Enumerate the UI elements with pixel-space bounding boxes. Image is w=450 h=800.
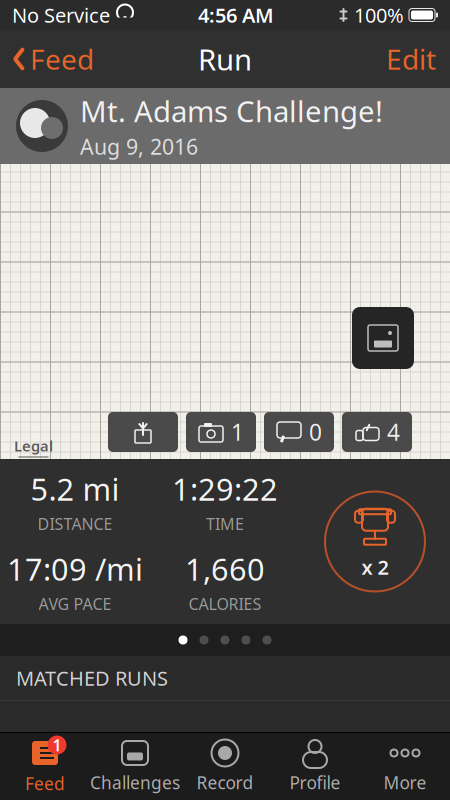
staticText: Challenges: [90, 771, 180, 794]
staticText: 1:29:22: [172, 468, 278, 509]
staticText: x 2: [361, 554, 388, 580]
staticText: MATCHED RUNS: [16, 665, 168, 691]
staticText: 4: [387, 417, 400, 447]
staticText: Aug 9, 2016: [80, 132, 198, 161]
staticText: Mt. Adams Challenge!: [80, 91, 383, 130]
button[interactable]: Profile: [270, 733, 360, 800]
staticText: Feed: [30, 40, 94, 78]
staticText: AVG PACE: [38, 593, 111, 614]
staticText: DISTANCE: [37, 513, 112, 534]
staticText: Edit: [386, 40, 436, 78]
staticText: CALORIES: [188, 593, 261, 614]
button[interactable]: Legal: [14, 436, 53, 457]
staticText: 17:09 /mi: [7, 548, 143, 589]
button[interactable]: Record: [180, 733, 270, 800]
staticText: Profile: [289, 771, 340, 794]
staticText: More: [383, 771, 426, 794]
staticText: 100%: [354, 2, 404, 28]
button[interactable]: 1: [0, 733, 90, 800]
staticText: 1,660: [185, 548, 265, 589]
staticText: Run: [198, 39, 252, 78]
button[interactable]: Comments: [264, 412, 334, 452]
staticText: 1: [52, 734, 61, 756]
staticText: Record: [196, 771, 253, 794]
button[interactable]: Challenges: [90, 733, 180, 800]
staticText: No Service: [12, 2, 110, 28]
staticText: 1: [231, 417, 244, 447]
staticText: 0: [309, 417, 322, 447]
button[interactable]: Share: [108, 412, 178, 452]
staticText: 5.2 mi: [30, 468, 119, 509]
button[interactable]: Feed: [0, 33, 106, 85]
button[interactable]: More: [360, 733, 450, 800]
staticText: Feed: [25, 772, 65, 795]
button[interactable]: Likes: [342, 412, 412, 452]
button[interactable]: Photo: [352, 307, 414, 369]
staticText: 4:56 AM: [198, 2, 274, 28]
button[interactable]: Edit: [372, 33, 450, 85]
staticText: Legal: [14, 436, 53, 455]
button[interactable]: Photos: [186, 412, 256, 452]
staticText: TIME: [206, 513, 244, 534]
